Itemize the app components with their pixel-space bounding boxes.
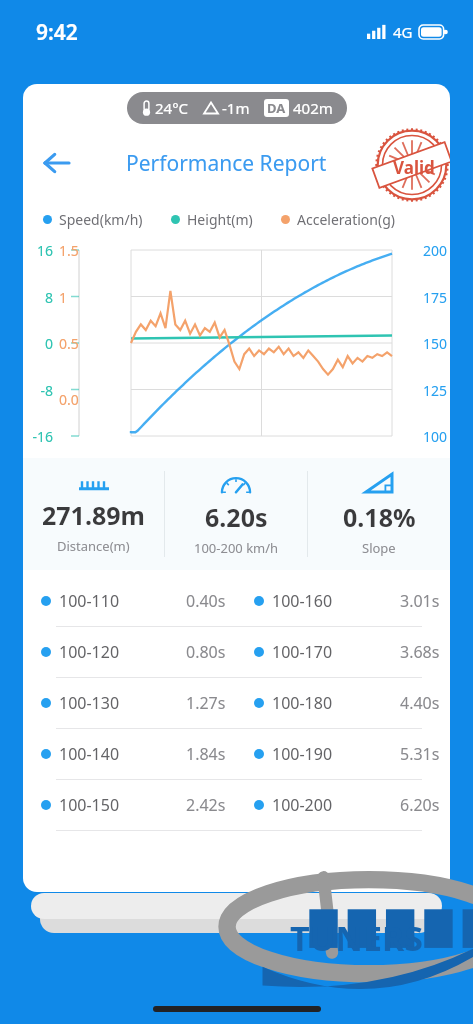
staticText: 0.5 bbox=[59, 334, 93, 353]
staticText: 8 bbox=[27, 288, 53, 307]
staticText: 100-120 bbox=[59, 641, 120, 663]
button[interactable]: 100-150 bbox=[23, 780, 450, 830]
staticText: 100-110 bbox=[59, 590, 120, 612]
staticText: 100-140 bbox=[59, 743, 120, 765]
staticText: 1.27s bbox=[186, 692, 226, 714]
staticText: 3.01s bbox=[400, 590, 440, 612]
staticText: 0.80s bbox=[186, 641, 226, 663]
staticText: -16 bbox=[27, 427, 53, 446]
staticText: 4.40s bbox=[400, 692, 440, 714]
button[interactable]: 0.18% bbox=[308, 458, 450, 570]
staticText: Distance(m) bbox=[57, 537, 130, 555]
staticText: 0.40s bbox=[186, 590, 226, 612]
button[interactable]: 100-140 bbox=[23, 729, 450, 779]
staticText: 0.0 bbox=[59, 390, 93, 409]
staticText: -1m bbox=[222, 98, 250, 118]
staticText: 4G bbox=[393, 22, 413, 42]
staticText: 1 bbox=[59, 288, 93, 307]
staticText: 16 bbox=[27, 241, 53, 260]
staticText: 9:42 bbox=[36, 18, 78, 47]
staticText: 0 bbox=[27, 334, 53, 353]
staticText: 100-130 bbox=[59, 692, 120, 714]
staticText: TUNERS bbox=[290, 915, 424, 961]
staticText: Performance Report bbox=[126, 149, 327, 178]
staticText: Slope bbox=[362, 539, 396, 557]
button[interactable]: 6.20s bbox=[165, 458, 307, 570]
staticText: 100 bbox=[423, 427, 448, 446]
staticText: -8 bbox=[27, 381, 53, 400]
staticText: 6.20s bbox=[205, 500, 268, 534]
staticText: 125 bbox=[423, 381, 448, 400]
staticText: 5.31s bbox=[400, 743, 440, 765]
staticText: 100-170 bbox=[272, 641, 333, 663]
staticText: 150 bbox=[423, 334, 448, 353]
staticText: 100-160 bbox=[272, 590, 333, 612]
staticText: 2.42s bbox=[186, 794, 226, 816]
staticText: 3.68s bbox=[400, 641, 440, 663]
staticText: Height(m) bbox=[187, 210, 253, 229]
button[interactable]: 100-110 bbox=[23, 576, 450, 626]
staticText: Valid bbox=[393, 156, 435, 179]
button[interactable]: 100-120 bbox=[23, 627, 450, 677]
staticText: 100-150 bbox=[59, 794, 120, 816]
staticText: 402m bbox=[293, 98, 333, 118]
staticText: 1.84s bbox=[186, 743, 226, 765]
staticText: 0.18% bbox=[343, 500, 416, 534]
staticText: 1.5 bbox=[59, 241, 93, 260]
button[interactable]: Back bbox=[33, 140, 79, 186]
staticText: DA bbox=[267, 99, 286, 117]
button[interactable]: 100-130 bbox=[23, 678, 450, 728]
staticText: 271.89m bbox=[42, 498, 145, 532]
staticText: 6.20s bbox=[400, 794, 440, 816]
staticText: 200 bbox=[423, 241, 448, 260]
staticText: 100-200 bbox=[272, 794, 333, 816]
staticText: 100-200 km/h bbox=[194, 539, 279, 557]
staticText: Acceleration(g) bbox=[297, 210, 395, 229]
staticText: 100-190 bbox=[272, 743, 333, 765]
staticText: 24°C bbox=[155, 98, 189, 118]
staticText: 100-180 bbox=[272, 692, 333, 714]
staticText: 175 bbox=[423, 288, 448, 307]
staticText: Speed(km/h) bbox=[59, 210, 143, 229]
button[interactable]: 271.89m bbox=[23, 458, 164, 570]
